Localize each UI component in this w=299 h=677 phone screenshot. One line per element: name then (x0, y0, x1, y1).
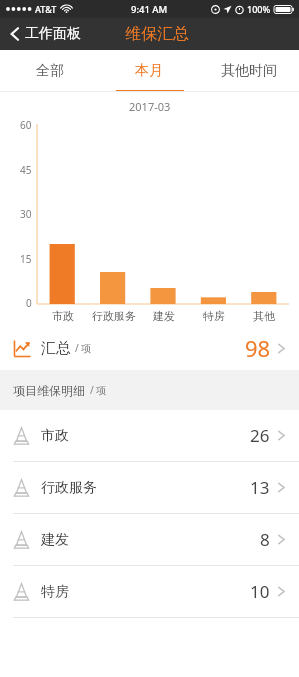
other: Open details (277, 532, 286, 547)
staticText: 维保汇总 (125, 24, 189, 44)
button[interactable]: 工作面板 (9, 18, 89, 50)
staticText: 15 (20, 252, 32, 266)
staticText: 建发 (153, 309, 175, 323)
staticText: 本月 (135, 62, 163, 80)
staticText: 30 (20, 207, 32, 221)
button[interactable]: 汇总 (0, 326, 299, 370)
staticText: 工作面板 (25, 25, 81, 43)
staticText: 100% (247, 3, 271, 15)
button[interactable]: 本月 (99, 50, 199, 92)
staticText: 0 (26, 296, 32, 310)
staticText: 全部 (36, 62, 64, 80)
staticText: / 项 (90, 383, 107, 397)
other: Open details (277, 584, 286, 599)
staticText: 项目维保明细 (13, 383, 85, 398)
staticText: 45 (20, 163, 32, 177)
staticText: / 项 (75, 341, 92, 355)
button[interactable]: 全部 (0, 50, 99, 92)
staticText: 特房 (203, 309, 225, 323)
button[interactable]: 特房 (0, 566, 299, 617)
other: Open details (277, 341, 286, 356)
staticText: 汇总 (41, 339, 71, 358)
staticText: 市政 (41, 427, 69, 445)
staticText: 26 (250, 424, 270, 447)
staticText: 8 (260, 528, 270, 551)
staticText: 9:41 AM (131, 3, 168, 16)
button[interactable]: 建发 (0, 514, 299, 565)
other: Open details (277, 480, 286, 495)
button[interactable]: 其他时间 (199, 50, 299, 92)
staticText: 市政 (52, 309, 74, 323)
staticText: 98 (245, 333, 271, 363)
staticText: 建发 (41, 531, 69, 549)
staticText: 特房 (41, 583, 69, 601)
staticText: 行政服务 (41, 479, 97, 497)
staticText: 2017-03 (129, 99, 171, 114)
other: Open details (277, 428, 286, 443)
button[interactable]: 行政服务 (0, 462, 299, 513)
staticText: 其他 (253, 309, 275, 323)
button[interactable]: 市政 (0, 410, 299, 461)
staticText: 10 (250, 580, 270, 603)
staticText: 60 (20, 118, 32, 132)
staticText: 行政服务 (92, 309, 136, 323)
staticText: 13 (250, 476, 270, 499)
staticText: 其他时间 (221, 62, 277, 80)
staticText: AT&T (35, 3, 57, 15)
